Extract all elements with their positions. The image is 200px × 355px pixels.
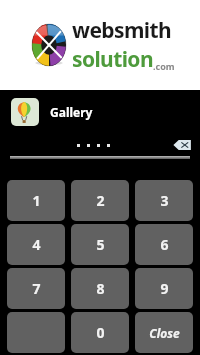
staticText: 7 bbox=[32, 279, 41, 298]
button[interactable]: Blank key bbox=[7, 312, 65, 353]
button[interactable]: Gallery bbox=[0, 90, 200, 134]
button[interactable]: 4 bbox=[7, 224, 65, 265]
button[interactable]: 7 bbox=[7, 268, 65, 309]
staticText: 3 bbox=[160, 191, 169, 210]
button[interactable]: 1 bbox=[7, 180, 65, 221]
button[interactable]: 8 bbox=[71, 268, 129, 309]
staticText: 2 bbox=[96, 191, 105, 210]
button[interactable]: 2 bbox=[71, 180, 129, 221]
button[interactable]: Close bbox=[135, 312, 193, 353]
staticText: solution bbox=[72, 45, 153, 74]
staticText: 6 bbox=[160, 235, 169, 254]
staticText: 0 bbox=[96, 323, 105, 342]
button[interactable]: 0 bbox=[71, 312, 129, 353]
button[interactable]: Backspace bbox=[173, 139, 192, 151]
staticText: 4 bbox=[32, 235, 41, 254]
staticText: 8 bbox=[96, 279, 105, 298]
button[interactable]: 5 bbox=[71, 224, 129, 265]
button[interactable]: 3 bbox=[135, 180, 193, 221]
button[interactable]: 9 bbox=[135, 268, 193, 309]
staticText: Close bbox=[149, 325, 180, 341]
staticText: .com bbox=[153, 60, 175, 72]
staticText: 1 bbox=[32, 191, 41, 210]
staticText: 9 bbox=[160, 279, 169, 298]
staticText: Gallery bbox=[50, 104, 93, 120]
staticText: websmith bbox=[72, 16, 172, 45]
staticText: 5 bbox=[96, 235, 105, 254]
button[interactable]: 6 bbox=[135, 224, 193, 265]
